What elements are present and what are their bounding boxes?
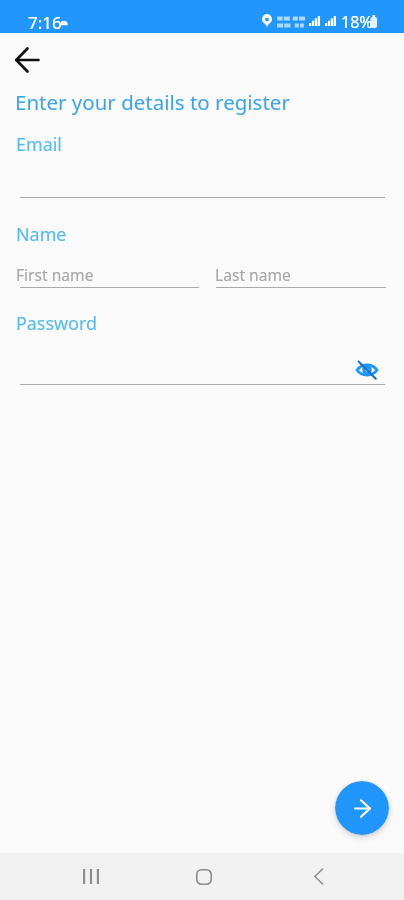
- button[interactable]: Show password: [352, 355, 382, 385]
- staticText: 7:16: [28, 11, 62, 34]
- button[interactable]: Back: [5, 38, 49, 82]
- staticText: Name: [16, 222, 67, 246]
- staticText: Last name: [215, 264, 291, 285]
- button[interactable]: Back: [294, 853, 342, 900]
- button[interactable]: Home: [180, 853, 228, 900]
- staticText: Email: [16, 132, 62, 156]
- staticText: 18%: [341, 11, 373, 33]
- button[interactable]: Recent apps: [67, 853, 115, 900]
- button[interactable]: Next: [335, 781, 389, 835]
- staticText: Password: [16, 311, 97, 335]
- staticText: First name: [16, 264, 94, 285]
- staticText: Enter your details to register: [15, 88, 290, 116]
